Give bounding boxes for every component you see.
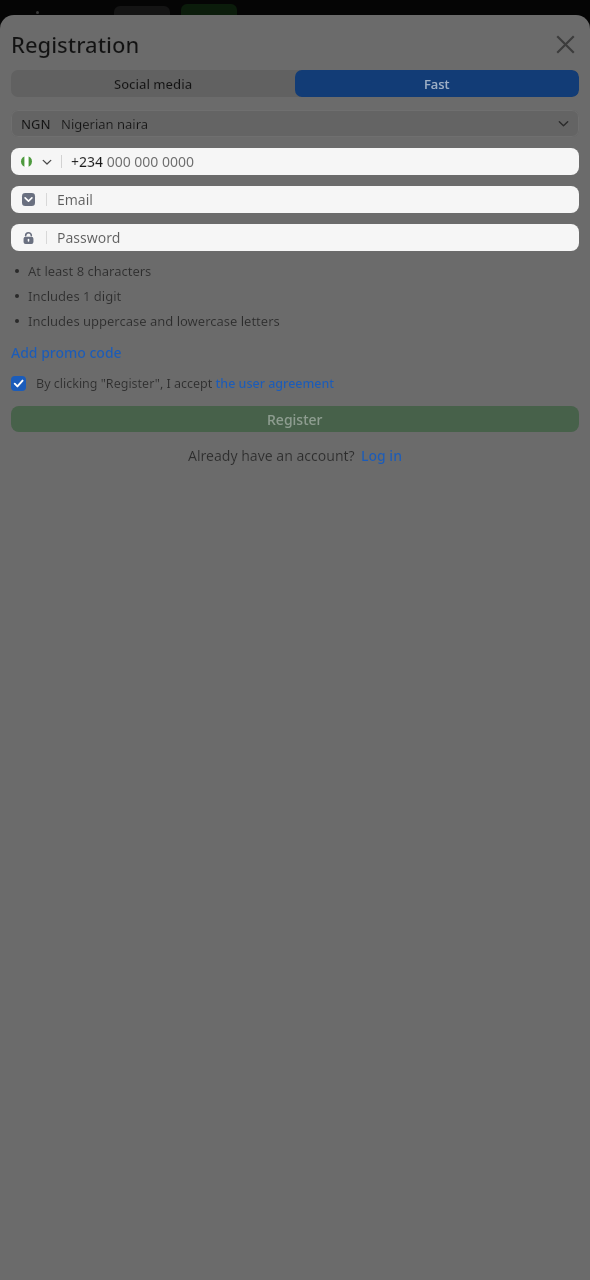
staticText: At least 8 characters [28, 262, 152, 280]
staticText: Includes 1 digit [28, 287, 122, 305]
button[interactable]: By clicking "Register", I accept the use… [11, 375, 579, 392]
button[interactable]: +234 000 000 0000 [11, 148, 579, 175]
button[interactable]: NGN [11, 110, 579, 137]
staticText: Email [57, 190, 93, 209]
other: Email [22, 193, 35, 206]
staticText: Register [267, 410, 323, 429]
staticText: Nigerian naira [61, 115, 149, 133]
staticText: Password [57, 228, 121, 247]
staticText: Log in [361, 446, 402, 465]
other: Password [22, 231, 35, 244]
staticText: NGN [21, 115, 51, 133]
button[interactable]: Add promo code [11, 343, 122, 362]
button[interactable]: Email [11, 186, 579, 213]
button[interactable]: Password [11, 224, 579, 251]
staticText: Fast [424, 75, 450, 93]
staticText: Already have an account? [188, 446, 355, 465]
staticText: By clicking "Register", I accept the use… [36, 375, 335, 392]
staticText: +234 000 000 0000 [71, 152, 195, 171]
staticText: Social media [114, 75, 193, 93]
staticText: Add promo code [11, 343, 122, 362]
button[interactable]: Fast [295, 70, 579, 97]
button[interactable]: Close [548, 27, 582, 61]
staticText: Registration [11, 29, 140, 59]
button[interactable]: Social media [11, 70, 295, 97]
button[interactable]: Log in [361, 446, 402, 465]
staticText: Includes uppercase and lowercase letters [28, 312, 280, 330]
button[interactable]: Register [11, 406, 579, 432]
